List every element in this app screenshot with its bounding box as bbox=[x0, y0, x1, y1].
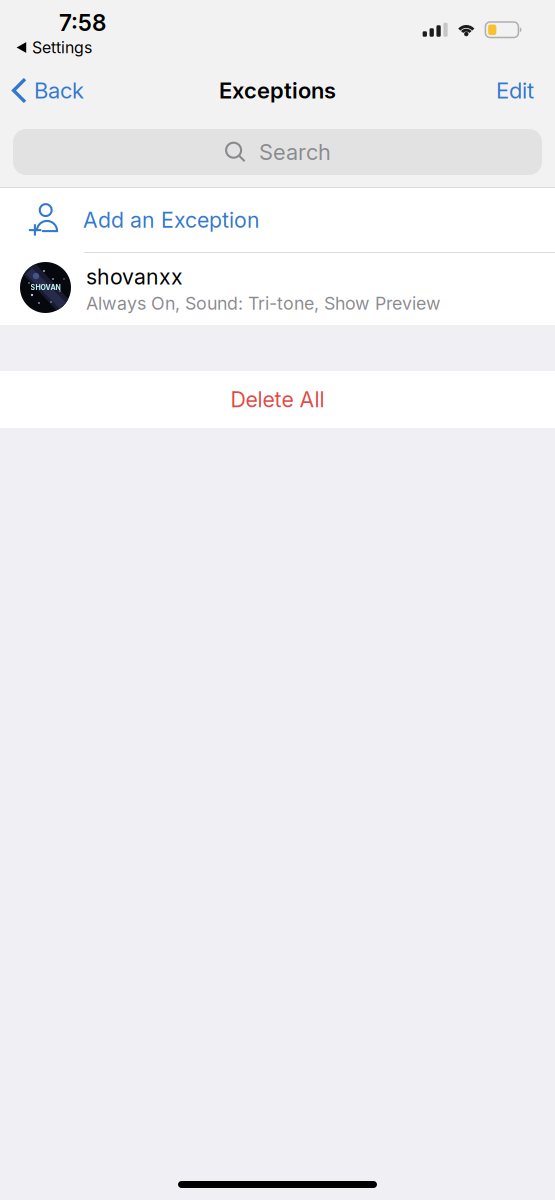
staticText: Back bbox=[34, 77, 84, 104]
button[interactable]: Add an Exception bbox=[0, 188, 555, 252]
staticText: shovanxx bbox=[86, 264, 183, 290]
button[interactable]: Edit bbox=[480, 68, 555, 113]
button[interactable]: Delete All bbox=[0, 371, 555, 428]
button[interactable]: SHOVAN bbox=[0, 253, 555, 325]
button[interactable]: Back bbox=[0, 68, 84, 113]
staticText: SHOVAN bbox=[30, 283, 60, 292]
staticText: Settings bbox=[32, 38, 92, 57]
staticText: Always On, Sound: Tri-tone, Show Preview bbox=[86, 293, 441, 314]
staticText: Exceptions bbox=[219, 77, 336, 104]
staticText: Delete All bbox=[230, 387, 324, 412]
staticText: 7:58 bbox=[59, 9, 106, 36]
staticText: Search bbox=[259, 139, 331, 165]
staticText: Add an Exception bbox=[83, 207, 260, 233]
staticText: Edit bbox=[496, 77, 534, 104]
button[interactable]: Settings bbox=[0, 0, 92, 57]
